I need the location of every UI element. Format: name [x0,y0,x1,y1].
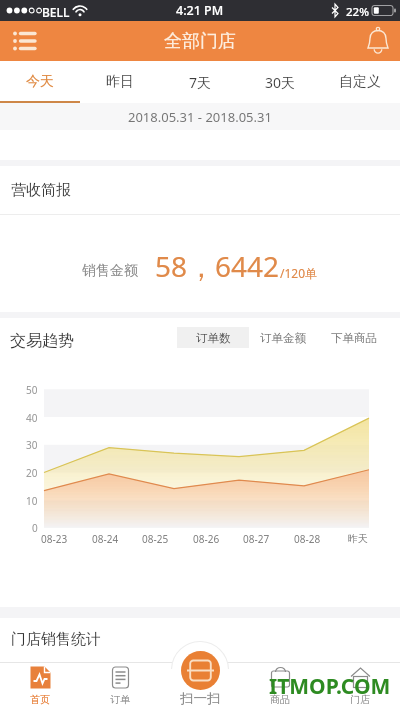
button[interactable]: 订单金额 [249,327,317,348]
staticText: 7天 [189,73,212,92]
staticText: 50 [26,383,38,397]
staticText: BELL [42,4,70,20]
button[interactable]: 订单数 [177,327,249,348]
staticText: 今天 [26,73,54,91]
staticText: 门店销售统计 [11,630,101,649]
staticText: 08-27 [243,532,270,546]
staticText: 首页 [30,693,50,706]
button[interactable]: 今天 [0,61,80,103]
button[interactable]: Notifications [356,21,400,61]
staticText: 0 [32,521,38,535]
staticText: 扫一扫 [180,690,221,707]
button[interactable]: 首页 [0,661,80,711]
button[interactable]: 自定义 [320,61,400,103]
button[interactable]: 30天 [240,61,320,103]
staticText: 22% [346,4,369,20]
button[interactable]: 订单 [80,661,160,711]
staticText: 08-28 [294,532,321,546]
staticText: 销售金额 [82,262,138,280]
staticText: 58，6442 [155,247,280,285]
staticText: 昨天 [348,532,368,545]
staticText: 08-23 [41,532,68,546]
staticText: 门店 [350,693,370,706]
staticText: 4:21 PM [176,2,224,19]
staticText: 40 [26,411,38,425]
staticText: 08-25 [142,532,169,546]
staticText: 交易趋势 [10,331,74,351]
staticText: 全部门店 [164,30,236,53]
staticText: 商品 [270,693,290,706]
button[interactable]: 门店 [320,661,400,711]
staticText: 订单数 [196,331,231,345]
staticText: 2018.05.31 - 2018.05.31 [128,108,272,126]
button[interactable]: 商品 [240,661,320,711]
staticText: 30 [26,438,38,452]
button[interactable]: 下单商品 [320,327,388,348]
staticText: 20 [26,466,38,480]
staticText: 昨日 [106,73,134,91]
staticText: 订单 [110,693,130,706]
button[interactable]: 昨日 [80,61,160,103]
button[interactable]: 扫一扫 [178,651,222,691]
staticText: /120单 [280,265,318,281]
staticText: 10 [26,494,38,508]
button[interactable]: Menu [0,21,44,61]
staticText: 08-26 [193,532,220,546]
staticText: 下单商品 [331,331,377,345]
button[interactable]: 7天 [160,61,240,103]
staticText: 自定义 [339,73,381,91]
staticText: ITMOP.COM [269,672,391,701]
staticText: 订单金额 [260,331,306,345]
staticText: 30天 [265,73,296,92]
staticText: 08-24 [92,532,119,546]
staticText: 营收简报 [11,181,71,200]
